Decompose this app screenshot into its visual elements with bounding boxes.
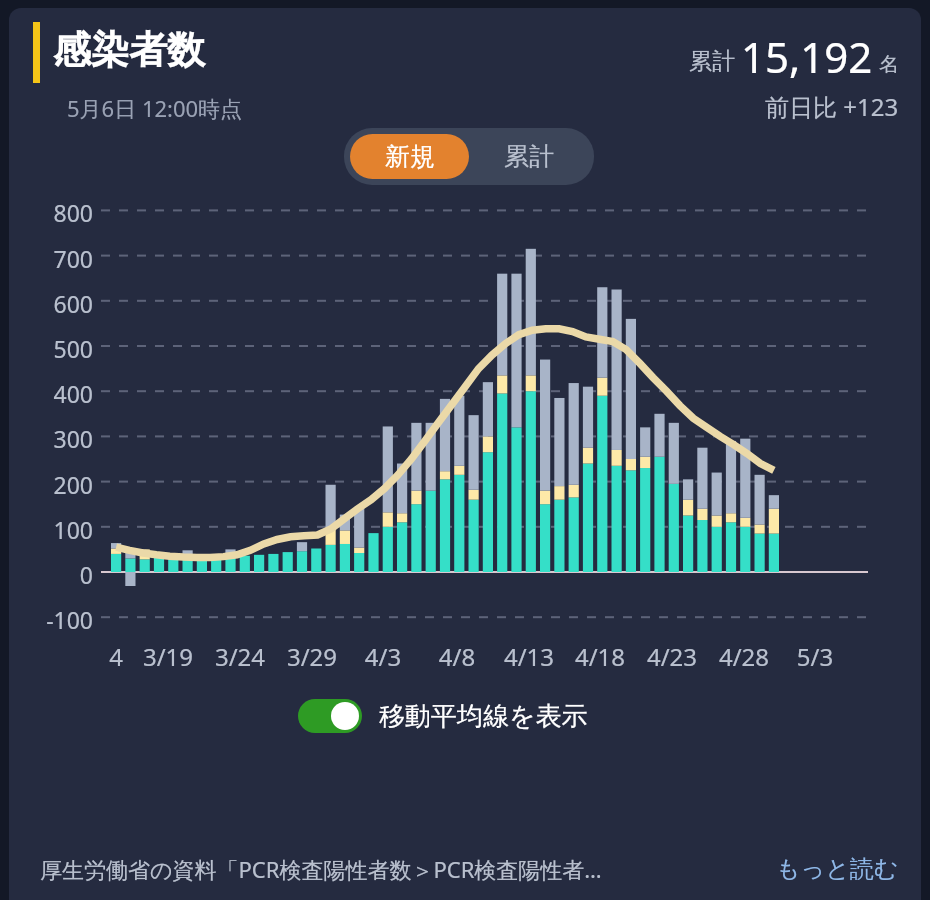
button[interactable]: もっと読む (776, 854, 899, 884)
staticText: 3/29 (282, 640, 342, 673)
button[interactable]: 累計 (469, 134, 588, 179)
staticText: 4/23 (642, 640, 702, 673)
staticText: 100 (9, 514, 93, 545)
staticText: 4/13 (499, 640, 559, 673)
other: 移動平均線を表示 切替 (298, 699, 362, 733)
staticText: 4/18 (570, 640, 630, 673)
staticText: 800 (9, 197, 93, 228)
staticText: 15,192 (741, 28, 873, 85)
staticText: -100 (9, 604, 93, 635)
staticText: 感染者数 (53, 26, 205, 74)
staticText: 3/24 (210, 640, 270, 673)
staticText: 累計 (504, 141, 554, 172)
staticText: 4/28 (714, 640, 774, 673)
staticText: 5/3 (785, 640, 845, 673)
staticText: 400 (9, 378, 93, 409)
staticText: 600 (9, 288, 93, 319)
staticText: 前日比 +123 (765, 90, 899, 123)
staticText: 0 (9, 559, 93, 590)
staticText: 700 (9, 243, 93, 274)
staticText: 新規 (385, 141, 435, 172)
staticText: 500 (9, 333, 93, 364)
staticText: もっと読む (776, 854, 899, 884)
staticText: 名 (879, 52, 899, 77)
button[interactable]: 移動平均線を表示 切替 (9, 699, 921, 733)
staticText: 300 (9, 423, 93, 454)
staticText: 累計 (689, 47, 735, 76)
staticText: 4/8 (427, 640, 487, 673)
staticText: 200 (9, 469, 93, 500)
staticText: 3/19 (138, 640, 198, 673)
staticText: 移動平均線を表示 (379, 700, 588, 733)
staticText: 4/3 (353, 640, 413, 673)
staticText: 4 (86, 640, 146, 673)
staticText: 厚生労働省の資料「PCR検査陽性者数＞PCR検査陽性者… (40, 854, 602, 884)
staticText: 5月6日 12:00時点 (67, 93, 243, 123)
button[interactable]: 新規 (350, 134, 469, 179)
